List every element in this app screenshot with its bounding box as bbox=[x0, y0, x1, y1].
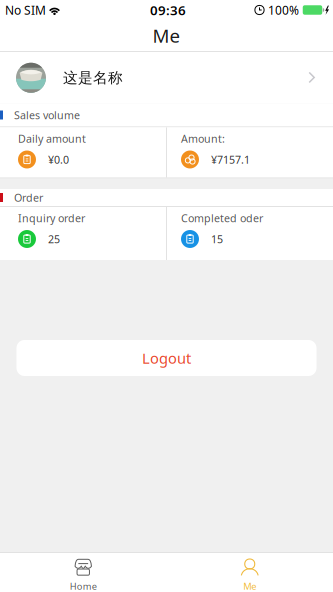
staticText: Daily amount bbox=[18, 131, 86, 146]
button[interactable]: Home bbox=[0, 553, 166, 592]
button[interactable]: Daily amount bbox=[0, 127, 166, 177]
staticText: Completed oder bbox=[181, 211, 263, 225]
staticText: Home bbox=[70, 580, 97, 592]
button[interactable]: Amount: bbox=[167, 127, 333, 177]
staticText: No SIM bbox=[5, 2, 46, 18]
staticText: 09:36 bbox=[150, 1, 186, 19]
staticText: Me bbox=[152, 23, 180, 48]
staticText: 这是名称 bbox=[63, 69, 123, 87]
staticText: 15 bbox=[211, 232, 223, 246]
staticText: Order bbox=[14, 190, 43, 205]
button[interactable]: Inquiry order bbox=[0, 207, 166, 260]
staticText: 100% bbox=[268, 2, 299, 18]
button[interactable]: Logout bbox=[16, 340, 316, 376]
button[interactable]: 这是名称 bbox=[0, 52, 333, 103]
staticText: Sales volume bbox=[14, 108, 80, 122]
staticText: ¥7157.1 bbox=[211, 152, 250, 167]
button[interactable]: Me bbox=[166, 553, 333, 592]
staticText: Amount: bbox=[181, 131, 225, 146]
staticText: ¥0.0 bbox=[48, 152, 69, 167]
staticText: Logout bbox=[142, 348, 191, 368]
staticText: 25 bbox=[48, 232, 60, 246]
button[interactable]: Completed oder bbox=[167, 207, 333, 260]
staticText: Inquiry order bbox=[18, 211, 85, 225]
staticText: Me bbox=[243, 580, 256, 592]
